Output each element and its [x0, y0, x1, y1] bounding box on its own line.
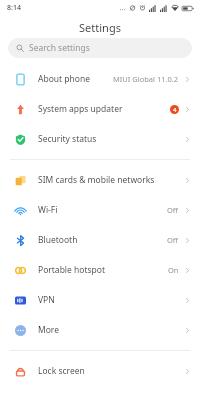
staticText: System apps updater [38, 103, 170, 115]
staticText: On [168, 265, 179, 275]
button[interactable]: Lock screen [0, 356, 200, 386]
staticText: Settings [79, 20, 121, 35]
staticText: SIM cards & mobile networks [38, 174, 184, 186]
staticText: More [38, 324, 184, 336]
staticText: Bluetooth [38, 234, 167, 246]
staticText: Security status [38, 133, 184, 145]
staticText: VPN [38, 294, 184, 306]
button[interactable]: Bluetooth [0, 225, 200, 255]
staticText: Search settings [29, 42, 90, 54]
staticText: Off [167, 205, 179, 215]
staticText: Lock screen [38, 365, 184, 377]
button[interactable]: System apps updater [0, 94, 200, 124]
button[interactable]: VPN [0, 285, 200, 315]
button[interactable]: Wi-Fi [0, 195, 200, 225]
staticText: 4 [173, 106, 177, 114]
staticText: MIUI Global 11.0.2 [113, 74, 179, 84]
staticText: 8:14 [7, 3, 21, 13]
staticText: Wi-Fi [38, 204, 167, 216]
button[interactable]: Security status [0, 124, 200, 154]
button[interactable]: Search settings [8, 38, 192, 58]
button[interactable]: About phone [0, 64, 200, 94]
button[interactable]: Portable hotspot [0, 255, 200, 285]
button[interactable]: SIM cards & mobile networks [0, 165, 200, 195]
button[interactable]: More [0, 315, 200, 345]
staticText: About phone [38, 73, 113, 85]
staticText: Portable hotspot [38, 264, 168, 276]
staticText: Off [167, 235, 179, 245]
